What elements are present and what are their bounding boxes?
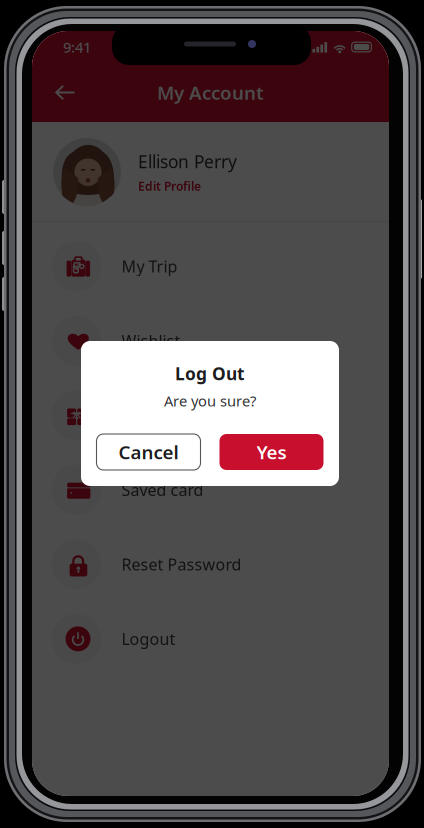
staticText: My Trip (121, 256, 177, 277)
staticText: Saved card (121, 479, 203, 500)
button[interactable]: Yes (219, 434, 323, 470)
button[interactable]: Saved card (32, 452, 389, 527)
button[interactable]: Cancel (96, 434, 200, 470)
staticText: Logout (121, 628, 175, 649)
staticText: Edit Profile (138, 178, 201, 194)
staticText: Are you sure? (164, 391, 256, 410)
button[interactable]: Offers (32, 378, 389, 452)
staticText: Reset Password (121, 554, 241, 575)
staticText: Ellison Perry (138, 150, 237, 173)
button[interactable]: Ellison Perry (32, 122, 389, 222)
button[interactable]: Reset Password (32, 527, 389, 601)
button[interactable]: Back (43, 70, 87, 114)
staticText: Wishlist (121, 330, 180, 351)
staticText: Cancel (118, 440, 178, 464)
staticText: Offers (121, 405, 168, 426)
staticText: Log Out (175, 362, 245, 385)
button[interactable]: Wishlist (32, 303, 389, 378)
button[interactable]: My Trip (32, 229, 389, 303)
staticText: My Account (157, 80, 264, 105)
staticText: 9:41 (63, 37, 91, 57)
staticText: Yes (256, 440, 286, 464)
button[interactable]: Logout (32, 601, 389, 676)
